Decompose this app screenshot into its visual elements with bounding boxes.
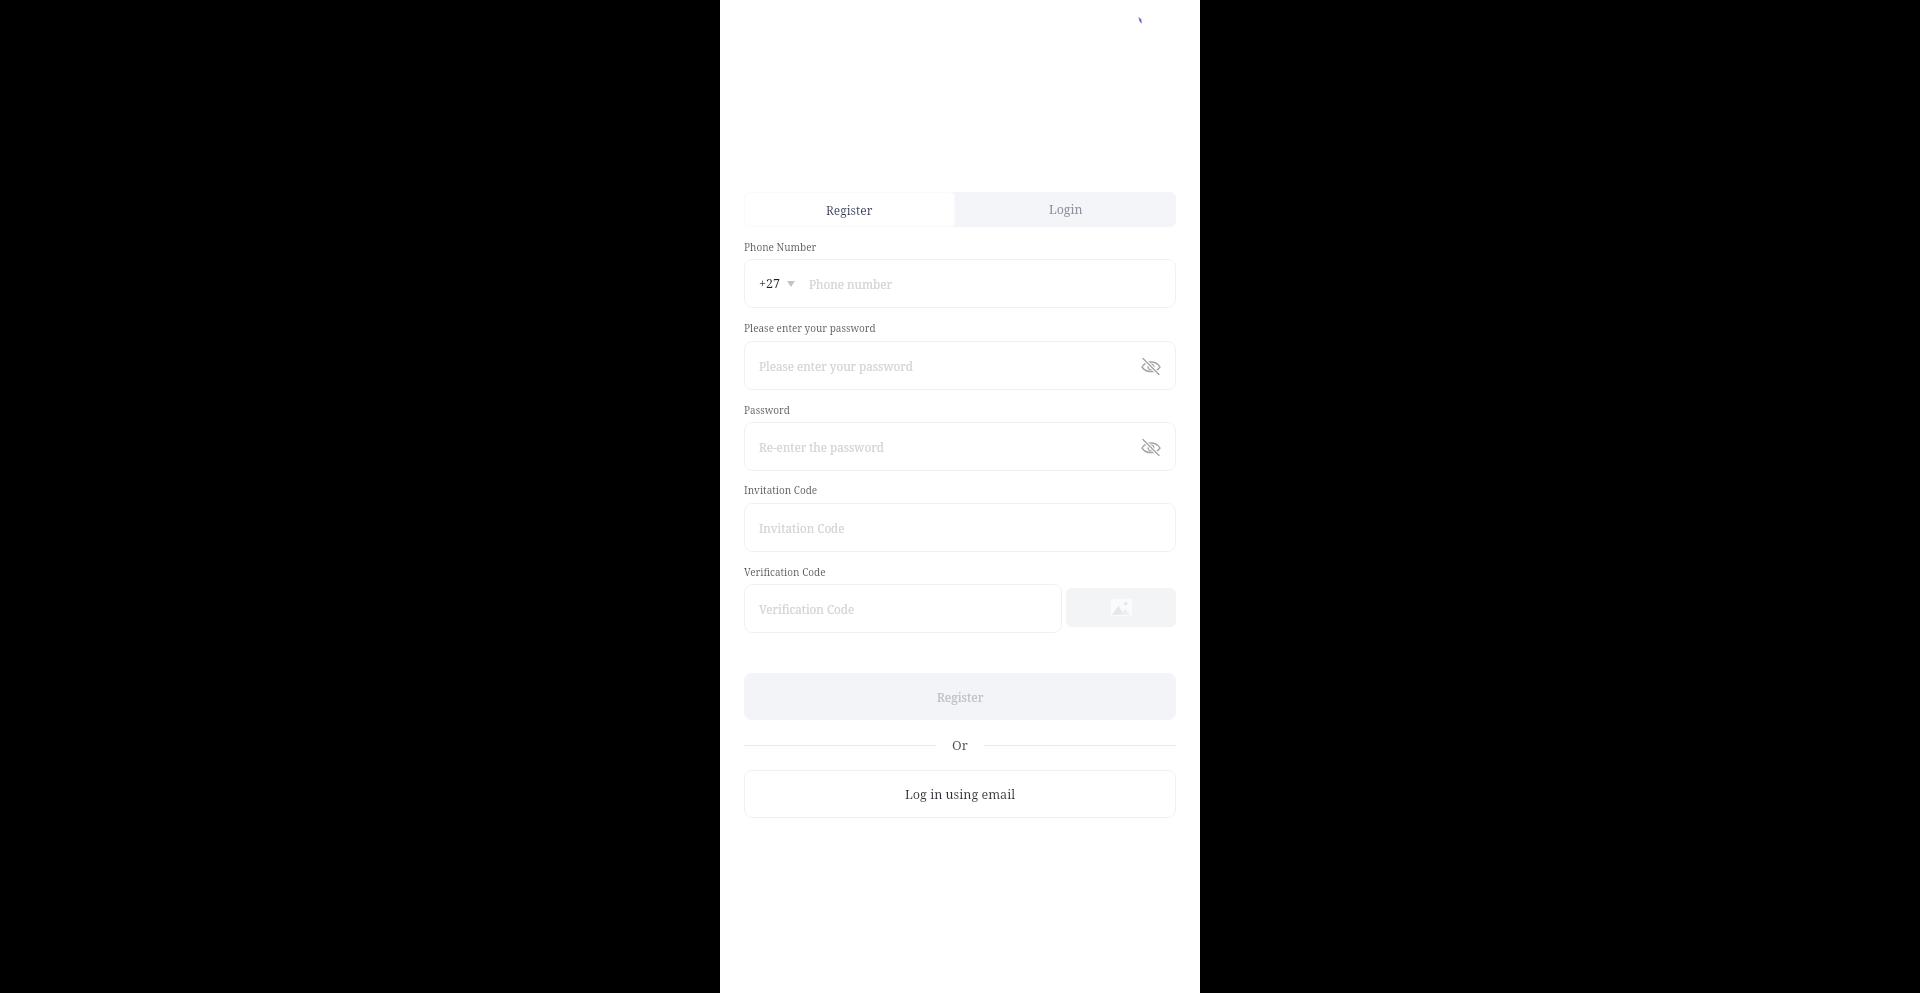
staticText: Or <box>952 736 968 754</box>
button[interactable]: Show password <box>1141 356 1161 376</box>
staticText: Phone Number <box>744 240 817 254</box>
staticText: Phone number <box>809 276 892 292</box>
staticText: Password <box>744 403 790 417</box>
staticText: +27 <box>759 275 781 292</box>
button[interactable]: +27 <box>744 259 1176 308</box>
staticText: Verification Code <box>744 565 826 579</box>
staticText: Register <box>826 202 873 218</box>
staticText: Login <box>1049 201 1083 218</box>
button[interactable]: Invitation Code <box>744 503 1176 552</box>
button[interactable]: Verification Code <box>744 584 1062 633</box>
staticText: Please enter your password <box>759 358 913 374</box>
button[interactable]: Login <box>955 192 1176 227</box>
staticText: Re-enter the password <box>759 439 884 455</box>
staticText: Invitation Code <box>744 483 818 497</box>
staticText: Log in using email <box>905 786 1016 803</box>
staticText: Please enter your password <box>744 321 876 335</box>
button[interactable]: Re-enter the password <box>744 422 1176 471</box>
staticText: Invitation Code <box>759 520 845 536</box>
button[interactable]: Register <box>744 673 1176 720</box>
staticText: Verification Code <box>759 601 855 617</box>
button[interactable]: Please enter your password <box>744 341 1176 390</box>
button[interactable]: Register <box>744 192 955 227</box>
button[interactable]: Show password <box>1141 437 1161 457</box>
staticText: Register <box>937 689 984 705</box>
button[interactable]: Log in using email <box>744 770 1176 818</box>
